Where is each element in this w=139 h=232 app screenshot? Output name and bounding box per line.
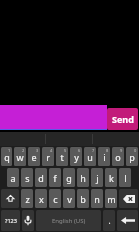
staticText: z bbox=[25, 193, 30, 205]
staticText: 1 bbox=[8, 148, 11, 153]
staticText: 8 bbox=[106, 148, 109, 153]
button[interactable]: s bbox=[21, 168, 33, 187]
staticText: ?123 bbox=[5, 217, 17, 224]
staticText: m bbox=[107, 193, 116, 205]
staticText: u bbox=[87, 151, 93, 163]
button[interactable]: g bbox=[63, 168, 75, 187]
button[interactable]: English (US) bbox=[36, 210, 101, 231]
staticText: 3 bbox=[36, 148, 39, 153]
staticText: 9 bbox=[120, 148, 123, 153]
button[interactable]: d bbox=[35, 168, 47, 187]
button[interactable] bbox=[0, 105, 107, 130]
button[interactable]: b bbox=[77, 189, 89, 208]
staticText: y bbox=[74, 151, 79, 163]
staticText: s bbox=[25, 172, 30, 184]
button[interactable]: w bbox=[14, 147, 26, 166]
button[interactable]: t bbox=[56, 147, 68, 166]
button[interactable]: o bbox=[112, 147, 124, 166]
button[interactable]: a bbox=[7, 168, 19, 187]
button[interactable]: Send bbox=[107, 108, 138, 130]
button[interactable]: r bbox=[42, 147, 54, 166]
staticText: d bbox=[38, 172, 44, 184]
button[interactable]: z bbox=[21, 189, 33, 208]
staticText: i bbox=[103, 151, 106, 163]
staticText: 2 bbox=[22, 148, 25, 153]
button[interactable]: q bbox=[1, 147, 12, 166]
button[interactable]: n bbox=[91, 189, 103, 208]
button[interactable]: e bbox=[28, 147, 40, 166]
staticText: h bbox=[80, 172, 86, 184]
button[interactable]: Voice input bbox=[22, 210, 34, 231]
button[interactable]: h bbox=[77, 168, 89, 187]
staticText: t bbox=[60, 151, 64, 163]
button[interactable]: p bbox=[126, 147, 138, 166]
staticText: 4 bbox=[50, 148, 53, 153]
staticText: q bbox=[4, 151, 10, 163]
staticText: r bbox=[46, 151, 50, 163]
button[interactable]: v bbox=[63, 189, 75, 208]
staticText: p bbox=[129, 151, 135, 163]
button[interactable]: c bbox=[49, 189, 61, 208]
button[interactable]: x bbox=[35, 189, 47, 208]
staticText: 7 bbox=[92, 148, 95, 153]
staticText: g bbox=[66, 172, 72, 184]
staticText: Send bbox=[112, 113, 134, 125]
staticText: o bbox=[115, 151, 121, 163]
staticText: k bbox=[109, 172, 114, 184]
staticText: f bbox=[53, 172, 57, 184]
staticText: l bbox=[124, 172, 127, 184]
button[interactable]: i bbox=[98, 147, 110, 166]
button[interactable]: u bbox=[84, 147, 96, 166]
staticText: . bbox=[108, 215, 111, 226]
staticText: 0 bbox=[134, 148, 137, 153]
staticText: x bbox=[39, 193, 44, 205]
staticText: b bbox=[80, 193, 86, 205]
button[interactable]: ?123 bbox=[1, 210, 20, 231]
staticText: w bbox=[16, 151, 24, 163]
button[interactable]: j bbox=[91, 168, 103, 187]
staticText: 6 bbox=[78, 148, 81, 153]
staticText: n bbox=[94, 193, 100, 205]
button[interactable]: Enter bbox=[117, 210, 138, 231]
staticText: v bbox=[67, 193, 72, 205]
button[interactable]: y bbox=[70, 147, 82, 166]
staticText: 5 bbox=[64, 148, 67, 153]
staticText: c bbox=[53, 193, 58, 205]
button[interactable]: f bbox=[49, 168, 61, 187]
staticText: j bbox=[96, 172, 99, 184]
button[interactable]: Shift bbox=[1, 189, 19, 208]
button[interactable]: m bbox=[105, 189, 117, 208]
staticText: English (US) bbox=[52, 217, 86, 225]
staticText: e bbox=[31, 151, 37, 163]
button[interactable]: k bbox=[105, 168, 117, 187]
button[interactable]: . bbox=[103, 210, 115, 231]
button[interactable]: l bbox=[119, 168, 131, 187]
button[interactable]: Backspace bbox=[119, 189, 138, 208]
staticText: a bbox=[10, 172, 16, 184]
